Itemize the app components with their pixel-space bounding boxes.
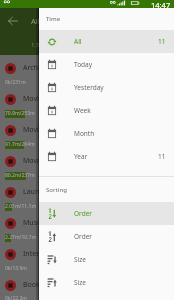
- staticText: Books: [23, 280, 44, 290]
- staticText: Size: [74, 278, 86, 287]
- staticText: Launcher: [23, 187, 54, 197]
- button[interactable]: Movies: [0, 89, 174, 120]
- button[interactable]: Today: [39, 53, 174, 76]
- button[interactable]: Launcher: [0, 182, 174, 213]
- button[interactable]: Back: [4, 12, 22, 30]
- staticText: Music: [23, 218, 43, 228]
- staticText: Year: [74, 152, 88, 161]
- staticText: 0k/231m: [5, 79, 26, 86]
- button[interactable]: Music: [0, 213, 174, 244]
- button[interactable]: Order: [39, 202, 174, 225]
- staticText: 91.7m/264m: [5, 141, 35, 148]
- staticText: 2.01m/11.1m: [5, 203, 37, 210]
- button[interactable]: Year: [39, 145, 174, 168]
- button[interactable]: Size: [39, 271, 174, 294]
- staticText: Order: [74, 232, 92, 241]
- staticText: 14:47: [151, 0, 171, 8]
- button[interactable]: Internet: [0, 244, 174, 275]
- staticText: Movies: [23, 94, 47, 104]
- button[interactable]: Order: [39, 225, 174, 248]
- button[interactable]: All: [39, 30, 174, 53]
- staticText: Yesterday: [74, 83, 104, 92]
- button[interactable]: Movies: [0, 151, 174, 182]
- staticText: Month: [74, 129, 95, 138]
- button[interactable]: Archive: [0, 58, 174, 89]
- staticText: All applications: [31, 16, 85, 26]
- staticText: 2.27m/10.7m: [5, 234, 37, 241]
- button[interactable]: Movies: [0, 120, 174, 151]
- button[interactable]: Week: [39, 99, 174, 122]
- staticText: Sorting: [46, 186, 67, 194]
- button[interactable]: Yesterday: [39, 76, 174, 99]
- staticText: Size: [74, 255, 86, 264]
- button[interactable]: Size: [39, 248, 174, 271]
- staticText: 11: [158, 37, 166, 46]
- staticText: 0k/13.9m: [5, 265, 27, 272]
- staticText: Movies: [23, 125, 47, 135]
- staticText: 11: [158, 152, 166, 161]
- staticText: Archive: [23, 63, 48, 73]
- staticText: All: [74, 37, 82, 46]
- button[interactable]: Month: [39, 122, 174, 145]
- staticText: 80.2m/237m: [5, 172, 35, 179]
- staticText: Time: [46, 15, 61, 23]
- staticText: 0k/22.2m: [5, 295, 27, 300]
- staticText: 1.54g: [31, 41, 47, 49]
- staticText: Movies: [23, 156, 47, 166]
- staticText: Internet: [23, 249, 50, 259]
- staticText: 70.9m/253m: [5, 110, 35, 117]
- staticText: Order: [74, 209, 92, 218]
- staticText: Today: [74, 60, 93, 69]
- staticText: Week: [74, 106, 91, 115]
- button[interactable]: Books: [0, 275, 174, 300]
